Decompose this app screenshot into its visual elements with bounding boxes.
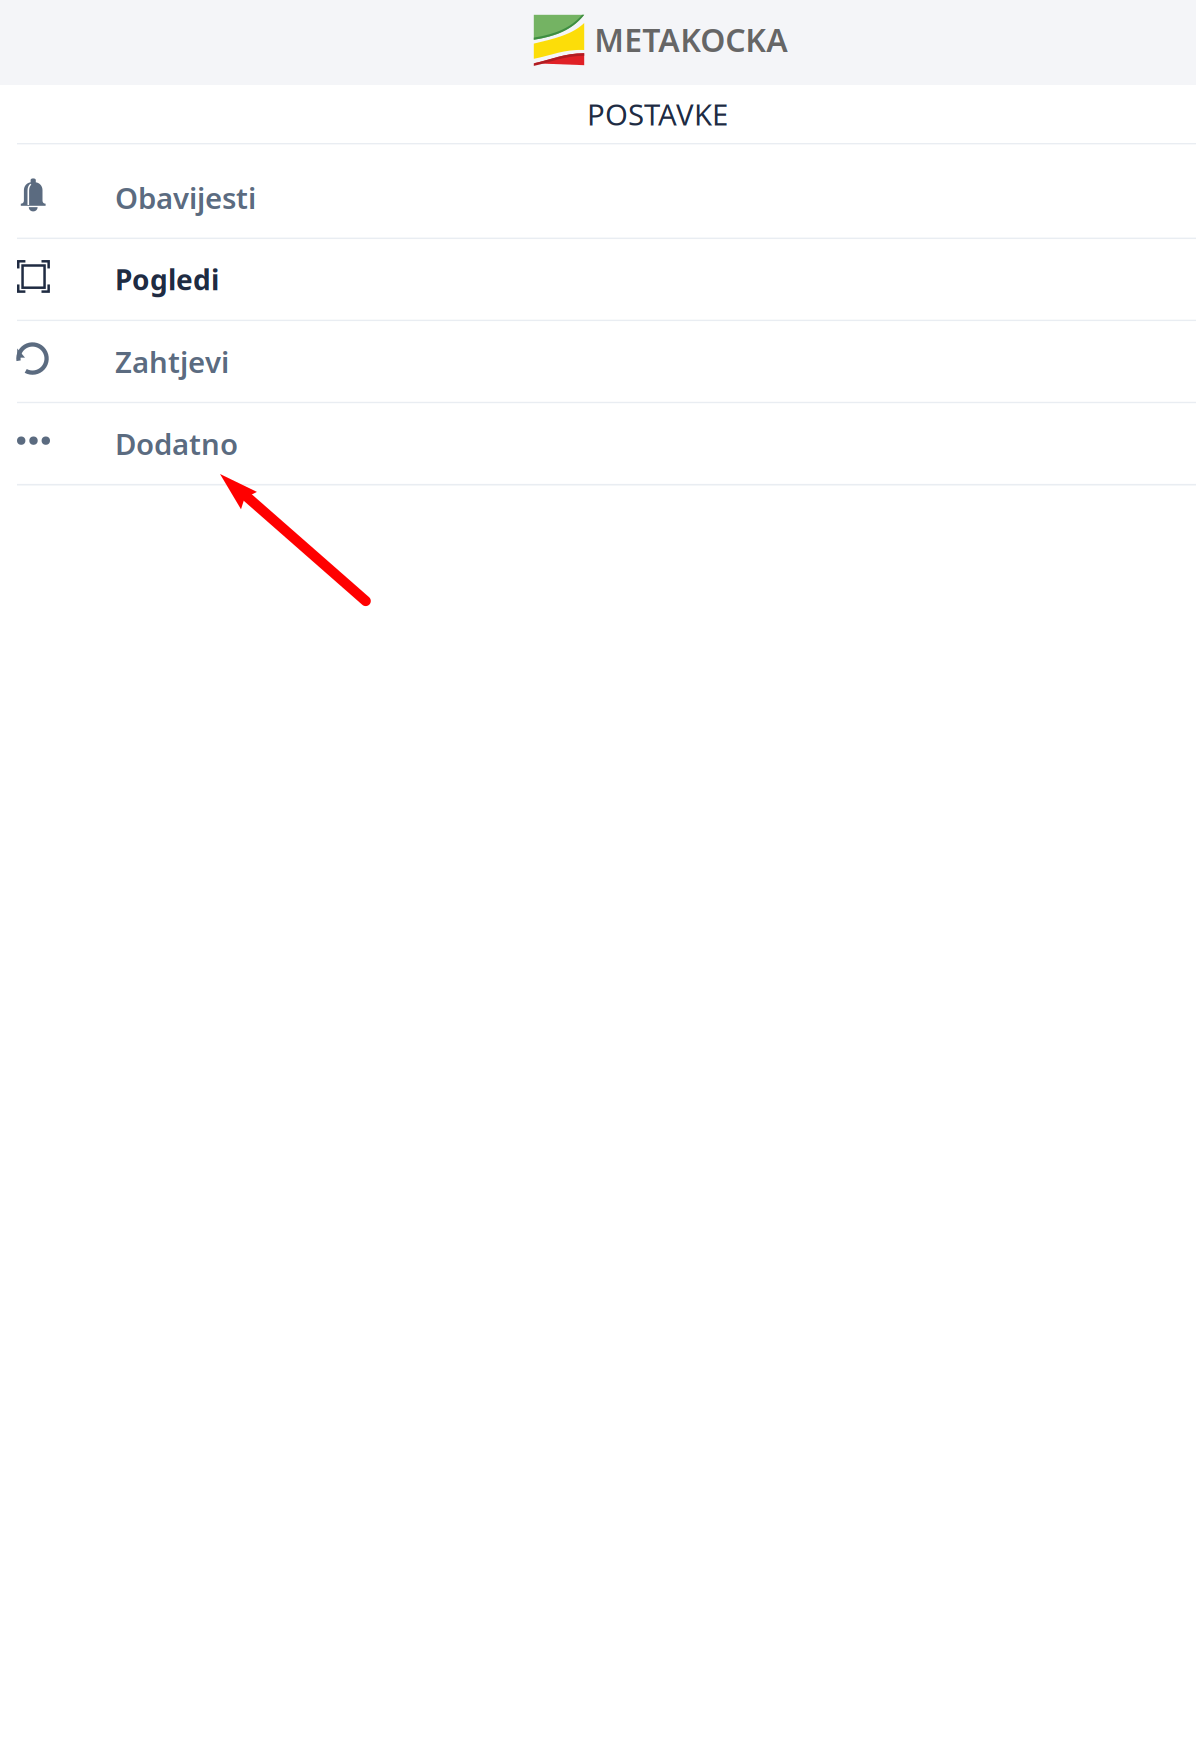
staticText: Obavijesti	[115, 178, 256, 217]
staticText: Zahtjevi	[115, 342, 229, 381]
staticText: Dodatno	[115, 424, 238, 463]
staticText: METAKOCKA	[594, 18, 788, 61]
button[interactable]: Pogledi	[0, 239, 1196, 320]
button[interactable]: Obavijesti	[0, 145, 1196, 238]
staticText: Pogledi	[115, 261, 219, 298]
button[interactable]: Metakocka home	[534, 17, 788, 68]
button[interactable]: Dodatno	[0, 403, 1196, 484]
staticText: POSTAVKE	[587, 94, 728, 133]
button[interactable]: Zahtjevi	[0, 321, 1196, 402]
